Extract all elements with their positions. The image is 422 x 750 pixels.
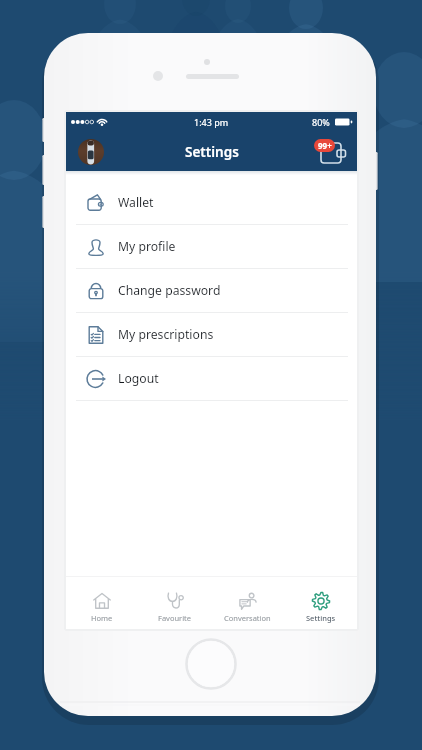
staticText: Logout [118,370,159,387]
button[interactable]: Settings [284,576,357,629]
button[interactable]: My profile [66,225,357,268]
button[interactable]: Wallet [315,140,347,164]
staticText: My profile [118,238,176,255]
staticText: Favourite [158,613,192,623]
staticText: Change password [118,282,221,299]
button[interactable]: Logout [66,357,357,400]
button[interactable]: Favourite [138,576,211,629]
staticText: Conversation [224,613,271,623]
staticText: My prescriptions [118,326,214,343]
staticText: Settings [306,613,336,623]
staticText: 1:43 pm [194,116,229,128]
button[interactable]: Home [66,576,138,629]
staticText: Home [91,613,113,623]
staticText: Settings [185,143,239,161]
button[interactable]: Wallet [66,181,357,224]
staticText: Wallet [118,194,154,211]
button[interactable]: Change password [66,269,357,312]
button[interactable]: Conversation [211,576,284,629]
button[interactable]: Profile photo [78,139,104,165]
button[interactable]: My prescriptions [66,313,357,356]
staticText: 80% [312,116,330,128]
staticText: 99+ [318,140,332,151]
